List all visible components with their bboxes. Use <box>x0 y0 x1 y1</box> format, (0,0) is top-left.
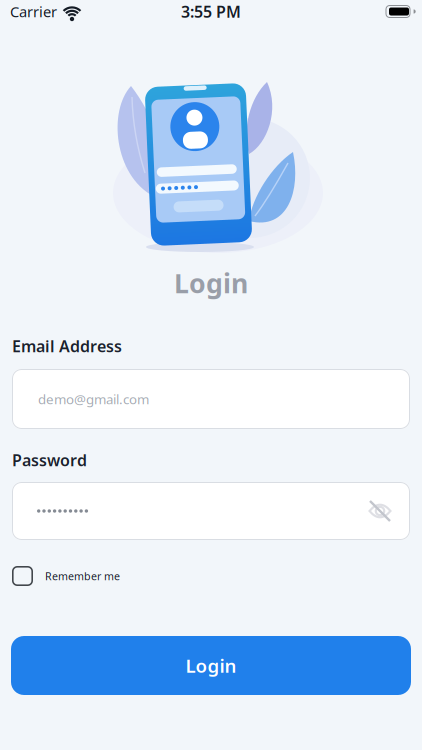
staticText: 3:55 PM <box>181 1 241 22</box>
staticText: Password <box>12 449 87 471</box>
button[interactable]: Login <box>11 636 411 695</box>
button[interactable]: Remember me <box>12 566 120 586</box>
staticText: Email Address <box>12 335 122 357</box>
staticText: Login <box>185 653 236 678</box>
staticText: Login <box>174 265 248 301</box>
staticText: demo@gmail.com <box>38 390 149 408</box>
button[interactable]: demo@gmail.com <box>12 369 410 429</box>
button[interactable]: Show password <box>368 501 392 521</box>
staticText: Remember me <box>45 569 120 583</box>
button[interactable] <box>12 482 410 540</box>
staticText: Carrier <box>10 2 57 21</box>
